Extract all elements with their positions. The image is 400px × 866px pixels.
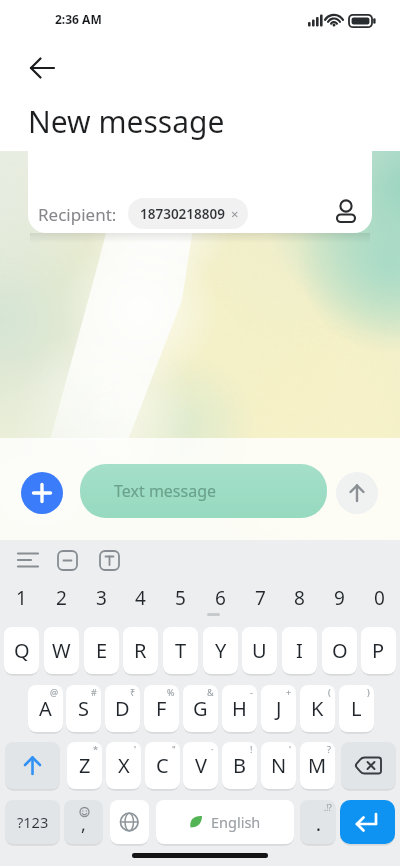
staticText: & xyxy=(207,686,214,698)
button[interactable]: H xyxy=(222,685,257,732)
staticText: E xyxy=(96,637,108,664)
button[interactable] xyxy=(21,472,63,514)
button[interactable]: 5 xyxy=(163,584,197,612)
staticText: N xyxy=(271,752,287,779)
staticText: R xyxy=(134,637,147,664)
staticText: + xyxy=(286,686,292,698)
staticText: H xyxy=(232,695,247,722)
button[interactable]: E xyxy=(84,627,119,674)
staticText: J xyxy=(276,695,282,722)
staticText: , xyxy=(81,812,86,837)
staticText: T xyxy=(175,637,187,664)
staticText: - xyxy=(250,686,253,698)
button[interactable]: Z xyxy=(67,742,102,789)
button[interactable]: Y xyxy=(203,627,238,674)
staticText: English xyxy=(211,812,261,832)
button[interactable] xyxy=(110,800,149,844)
button[interactable] xyxy=(340,800,395,844)
button[interactable]: V xyxy=(183,742,218,789)
button[interactable]: D xyxy=(105,685,140,732)
staticText: P xyxy=(372,637,385,664)
staticText: 1 xyxy=(16,585,27,611)
staticText: 6 xyxy=(215,585,226,611)
staticText: S xyxy=(78,695,89,722)
button[interactable]: R xyxy=(123,627,158,674)
staticText: @ xyxy=(50,686,59,698)
button[interactable] xyxy=(57,549,78,571)
button[interactable]: 9 xyxy=(322,584,356,612)
button[interactable]: W xyxy=(44,627,79,674)
button[interactable]: English xyxy=(156,800,294,844)
button[interactable]: U xyxy=(242,627,277,674)
button[interactable]: B xyxy=(222,742,257,789)
staticText: D xyxy=(115,695,130,722)
button[interactable]: . xyxy=(300,800,336,844)
staticText: ' xyxy=(134,743,137,755)
button[interactable]: O xyxy=(322,627,357,674)
button[interactable]: T xyxy=(163,627,198,674)
staticText: × xyxy=(231,205,239,223)
staticText: V xyxy=(195,752,207,779)
button[interactable]: F xyxy=(144,685,179,732)
button[interactable]: , xyxy=(64,800,103,844)
button[interactable] xyxy=(333,196,359,224)
staticText: 7 xyxy=(255,585,266,611)
staticText: 2 xyxy=(56,585,67,611)
button[interactable]: Q xyxy=(4,627,39,674)
button[interactable]: C xyxy=(145,742,180,789)
button[interactable]: 8 xyxy=(282,584,316,612)
staticText: ₹ xyxy=(130,686,136,698)
staticText: 8 xyxy=(294,585,305,611)
button[interactable]: 3 xyxy=(84,584,118,612)
button[interactable]: 6 xyxy=(203,584,237,612)
button[interactable]: 1 xyxy=(4,584,38,612)
staticText: Y xyxy=(215,637,227,664)
staticText: M xyxy=(308,752,327,779)
button[interactable]: K xyxy=(300,685,335,732)
button[interactable]: J xyxy=(261,685,296,732)
staticText: # xyxy=(91,686,97,698)
staticText: B xyxy=(233,752,246,779)
button[interactable]: G xyxy=(183,685,218,732)
staticText: Z xyxy=(79,752,91,779)
staticText: ) xyxy=(367,686,370,698)
staticText: 5 xyxy=(175,585,186,611)
staticText: K xyxy=(311,695,324,722)
button[interactable]: S xyxy=(66,685,101,732)
staticText: L xyxy=(351,695,362,722)
button[interactable]: 18730218809 xyxy=(128,198,248,229)
button[interactable]: M xyxy=(300,742,335,789)
staticText: 2:36 AM xyxy=(55,11,102,27)
staticText: 3 xyxy=(96,585,107,611)
button[interactable]: P xyxy=(361,627,396,674)
button[interactable] xyxy=(341,742,396,789)
button[interactable]: 0 xyxy=(362,584,396,612)
staticText: New message xyxy=(28,101,225,142)
button[interactable]: L xyxy=(339,685,374,732)
button[interactable]: A xyxy=(28,685,63,732)
button[interactable]: X xyxy=(106,742,141,789)
staticText: Q xyxy=(14,637,30,664)
staticText: X xyxy=(118,752,130,779)
staticText: I xyxy=(296,637,303,664)
staticText: 4 xyxy=(135,585,146,611)
button[interactable]: 2 xyxy=(44,584,78,612)
button[interactable] xyxy=(99,549,120,571)
button[interactable]: 7 xyxy=(243,584,277,612)
button[interactable]: Text message xyxy=(80,464,327,518)
button[interactable] xyxy=(26,54,58,84)
staticText: " xyxy=(172,743,176,755)
staticText: . xyxy=(316,812,321,837)
staticText: ! xyxy=(250,743,253,755)
staticText: C xyxy=(156,752,169,779)
button[interactable]: N xyxy=(261,742,296,789)
button[interactable] xyxy=(17,550,39,570)
button[interactable] xyxy=(336,472,378,514)
button[interactable] xyxy=(5,742,60,789)
button[interactable]: 4 xyxy=(123,584,157,612)
staticText: % xyxy=(167,686,175,698)
staticText: W xyxy=(52,637,71,664)
button[interactable]: I xyxy=(282,627,317,674)
staticText: ( xyxy=(328,686,331,698)
button[interactable]: ?123 xyxy=(5,800,60,844)
